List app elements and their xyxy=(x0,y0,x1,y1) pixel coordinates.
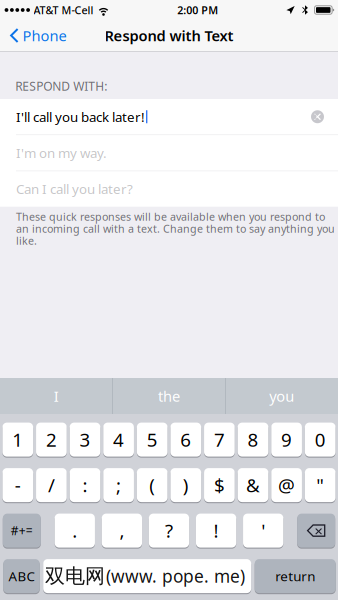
staticText: Phone xyxy=(22,26,66,45)
button[interactable]: ; xyxy=(103,467,134,503)
staticText: Respond with Text xyxy=(104,26,233,45)
button[interactable]: return xyxy=(255,558,336,594)
staticText: return xyxy=(275,567,315,585)
button[interactable]: 6 xyxy=(170,421,201,458)
button[interactable]: 4 xyxy=(103,421,134,458)
staticText: " xyxy=(316,473,324,497)
staticText: you xyxy=(269,386,294,406)
button[interactable]: 3 xyxy=(70,421,100,458)
button[interactable] xyxy=(43,558,251,594)
button[interactable]: . xyxy=(55,512,95,549)
staticText: ' xyxy=(261,518,265,543)
button[interactable]: , xyxy=(102,512,142,549)
staticText: I xyxy=(54,386,59,406)
staticText: 2:00 PM xyxy=(177,3,218,17)
button[interactable]: @ xyxy=(271,467,302,503)
staticText: ? xyxy=(165,518,173,543)
button[interactable] xyxy=(297,512,335,549)
staticText: ABC xyxy=(8,567,34,585)
staticText: @ xyxy=(278,473,295,497)
staticText: RESPOND WITH: xyxy=(15,78,107,94)
staticText: 0 xyxy=(315,427,326,452)
button[interactable]: / xyxy=(36,467,67,503)
button[interactable]: I xyxy=(0,378,112,414)
staticText: 4 xyxy=(113,427,124,452)
staticText: 7 xyxy=(214,427,225,452)
button[interactable]: Can I call you later? xyxy=(0,171,338,207)
staticText: (www. pope. me) xyxy=(106,565,245,588)
staticText: & xyxy=(246,473,260,497)
staticText: 1 xyxy=(12,427,23,452)
staticText: I'll call you back later! xyxy=(16,108,145,126)
staticText: 9 xyxy=(281,427,292,452)
staticText: I'm on my way. xyxy=(16,144,107,162)
staticText: 3 xyxy=(79,427,90,452)
staticText: like. xyxy=(16,234,37,248)
button[interactable]: 8 xyxy=(238,421,268,458)
staticText: ( xyxy=(149,473,155,497)
staticText: #+= xyxy=(11,523,33,538)
button[interactable]: ! xyxy=(196,512,236,549)
staticText: 2 xyxy=(46,427,57,452)
staticText: $ xyxy=(214,473,225,497)
staticText: 双电网 xyxy=(45,564,105,588)
button[interactable]: #+= xyxy=(3,512,41,549)
button[interactable]: $ xyxy=(204,467,235,503)
button[interactable]: : xyxy=(70,467,100,503)
staticText: ) xyxy=(183,473,189,497)
button[interactable]: 2 xyxy=(36,421,67,458)
button[interactable]: ABC xyxy=(3,558,40,594)
button[interactable]: ' xyxy=(243,512,283,549)
button[interactable]: you xyxy=(226,378,338,414)
staticText: Can I call you later? xyxy=(16,180,133,198)
staticText: 6 xyxy=(180,427,191,452)
staticText: 5 xyxy=(147,427,158,452)
staticText: AT&T M-Cell xyxy=(33,3,93,17)
button[interactable]: 0 xyxy=(305,421,336,458)
button[interactable]: 1 xyxy=(2,421,33,458)
staticText: , xyxy=(119,518,124,543)
staticText: ! xyxy=(214,518,219,543)
button[interactable]: ( xyxy=(137,467,168,503)
button[interactable]: - xyxy=(2,467,33,503)
button[interactable]: & xyxy=(238,467,268,503)
button[interactable]: I'll call you back later! xyxy=(0,99,338,134)
button[interactable]: 7 xyxy=(204,421,235,458)
button[interactable]: " xyxy=(305,467,336,503)
staticText: / xyxy=(48,473,55,497)
staticText: the xyxy=(158,386,180,406)
staticText: - xyxy=(15,473,21,497)
staticText: : xyxy=(82,473,87,497)
button[interactable]: I'm on my way. xyxy=(0,135,338,171)
button[interactable]: the xyxy=(113,378,225,414)
staticText: an incoming call with a text. Change the… xyxy=(16,222,335,236)
button[interactable]: 5 xyxy=(137,421,168,458)
staticText: . xyxy=(72,518,77,543)
button[interactable]: Phone xyxy=(0,20,74,51)
button[interactable]: ) xyxy=(170,467,201,503)
button[interactable]: ? xyxy=(149,512,189,549)
staticText: 8 xyxy=(247,427,258,452)
staticText: These quick responses will be available … xyxy=(16,210,325,224)
button[interactable]: 9 xyxy=(271,421,302,458)
staticText: ; xyxy=(116,473,121,497)
